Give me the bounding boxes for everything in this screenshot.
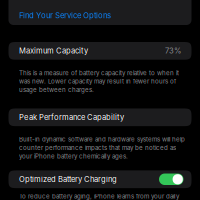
staticText: Peak Performance Capability bbox=[19, 113, 124, 122]
staticText: This is a measure of battery capacity re… bbox=[19, 69, 179, 93]
staticText: Find Your Service Options bbox=[19, 11, 111, 20]
staticText: 73% bbox=[165, 46, 181, 55]
button[interactable]: Optimized Battery Charging bbox=[159, 173, 183, 185]
staticText: Optimized Battery Charging bbox=[19, 175, 117, 184]
staticText: Maximum Capacity bbox=[19, 46, 88, 55]
staticText: To reduce battery aging, iPhone learns f… bbox=[19, 193, 179, 200]
staticText: Built-in dynamic software and hardware s… bbox=[19, 136, 185, 160]
button[interactable]: Find Your Service Options bbox=[8, 0, 191, 25]
button[interactable]: Peak Performance Capability bbox=[8, 108, 191, 126]
